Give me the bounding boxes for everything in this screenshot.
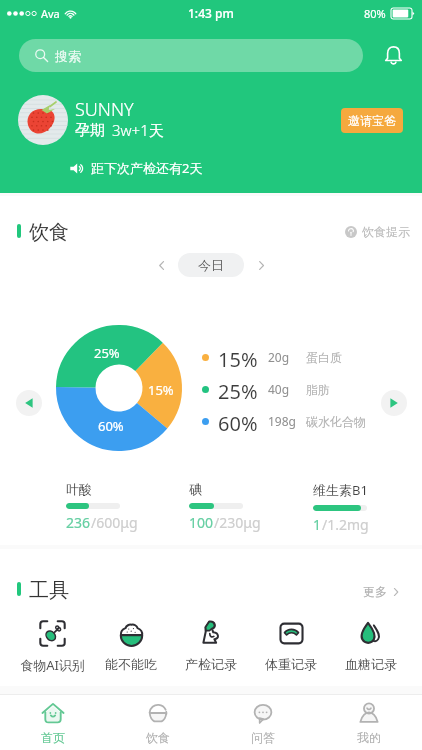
button[interactable]: 饮食提示 — [343, 222, 412, 241]
staticText: /600μg — [91, 513, 138, 532]
button[interactable]: Previous — [16, 390, 42, 416]
button[interactable]: 邀请宝爸 — [341, 108, 403, 133]
staticText: 3w+1天 — [112, 120, 164, 140]
staticText: SUNNY — [75, 97, 134, 122]
staticText: 碳水化合物 — [306, 414, 366, 429]
staticText: 25% — [218, 378, 258, 400]
staticText: 236 — [66, 513, 91, 532]
staticText: 今日 — [198, 257, 224, 273]
staticText: 饮食 — [146, 730, 170, 745]
staticText: 邀请宝爸 — [348, 113, 396, 128]
button[interactable]: Profile avatar — [18, 95, 68, 145]
button[interactable]: 我的 — [316, 695, 422, 750]
staticText: 饮食提示 — [362, 224, 410, 239]
staticText: 维生素B1 — [313, 481, 368, 499]
button[interactable]: 首页 — [0, 695, 105, 750]
staticText: 60% — [218, 410, 258, 432]
staticText: 叶酸 — [66, 481, 92, 497]
staticText: 198g — [268, 413, 296, 429]
staticText: 80% — [364, 6, 386, 21]
staticText: 饮食 — [29, 220, 69, 245]
staticText: 蛋白质 — [306, 350, 342, 365]
staticText: /1.2mg — [322, 515, 369, 534]
staticText: 40g — [268, 381, 290, 397]
staticText: 20g — [268, 349, 290, 365]
button[interactable]: Next day — [250, 254, 272, 276]
button[interactable]: Next — [381, 390, 407, 416]
staticText: 60% — [98, 417, 124, 435]
button[interactable]: 能不能吃 — [92, 619, 170, 672]
button[interactable]: 今日 — [178, 253, 244, 277]
staticText: 25% — [94, 344, 120, 362]
staticText: 搜索 — [55, 48, 81, 64]
staticText: 能不能吃 — [105, 656, 157, 672]
staticText: 15% — [148, 381, 174, 399]
staticText: 我的 — [357, 730, 381, 745]
button[interactable]: 饮食 — [105, 695, 210, 750]
button[interactable]: 体重记录 — [252, 619, 330, 672]
button[interactable]: 产检记录 — [172, 619, 250, 672]
staticText: 问答 — [251, 730, 275, 745]
staticText: 碘 — [189, 481, 202, 497]
staticText: 距下次产检还有2天 — [91, 159, 203, 177]
staticText: 1 — [313, 515, 322, 534]
button[interactable]: Notifications — [373, 39, 413, 72]
button[interactable]: 搜索 — [19, 39, 363, 72]
staticText: 首页 — [41, 730, 65, 745]
staticText: 15% — [218, 346, 258, 368]
button[interactable]: 血糖记录 — [332, 619, 410, 672]
button[interactable]: 问答 — [210, 695, 316, 750]
staticText: 血糖记录 — [345, 656, 397, 672]
staticText: 工具 — [29, 578, 69, 603]
button[interactable]: 更多 — [361, 582, 402, 601]
staticText: 1:43 pm — [188, 5, 234, 21]
staticText: /230μg — [214, 513, 261, 532]
staticText: 脂肪 — [306, 382, 330, 397]
staticText: 孕期 — [75, 121, 105, 140]
button[interactable]: 食物AI识别 — [13, 619, 91, 674]
staticText: 食物AI识别 — [20, 656, 85, 674]
staticText: 更多 — [363, 584, 387, 599]
staticText: 体重记录 — [265, 656, 317, 672]
staticText: 产检记录 — [185, 656, 237, 672]
staticText: 100 — [189, 513, 214, 532]
staticText: Ava — [41, 6, 60, 21]
button[interactable]: Previous day — [150, 254, 172, 276]
